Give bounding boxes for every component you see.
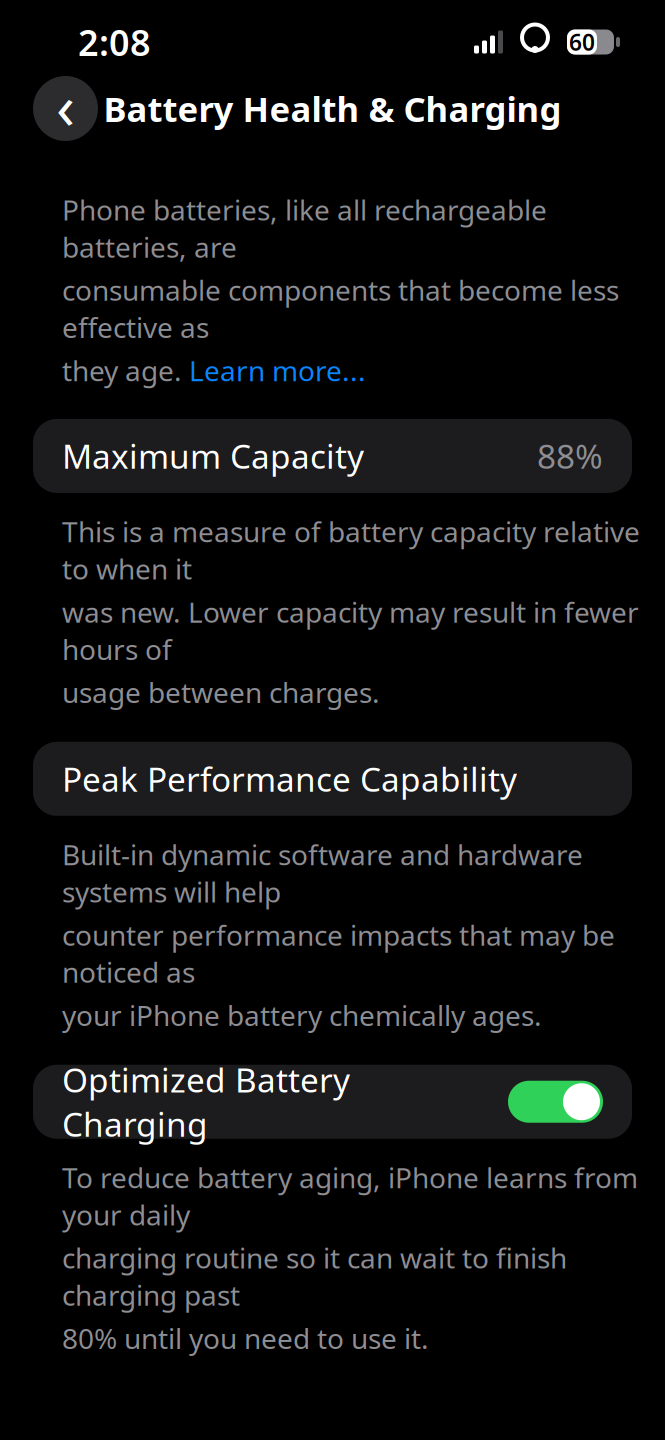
staticText: was new. Lower capacity may result in fe… <box>62 593 639 668</box>
staticText: ‹ <box>56 65 75 146</box>
staticText: Phone batteries, like all rechargeable b… <box>62 191 547 265</box>
staticText: counter performance impacts that may be … <box>62 916 615 991</box>
staticText: usage between charges. <box>62 674 380 711</box>
button[interactable]: Peak Performance Capability <box>33 742 632 816</box>
staticText: Maximum Capacity <box>62 434 364 478</box>
staticText: charging routine so it can wait to finis… <box>62 1239 567 1313</box>
button[interactable]: Maximum Capacity <box>33 419 632 493</box>
staticText: 80% until you need to use it. <box>62 1319 429 1357</box>
staticText: Learn more... <box>189 352 366 389</box>
button[interactable]: Learn more... <box>189 352 366 389</box>
staticText: consumable components that become less e… <box>62 271 619 346</box>
staticText: Peak Performance Capability <box>62 757 517 801</box>
staticText: Optimized Battery Charging <box>62 1057 350 1146</box>
staticText: they age. <box>62 352 189 389</box>
staticText: 2:08 <box>78 18 151 66</box>
staticText: Battery Health & Charging <box>103 85 561 131</box>
staticText: To reduce battery aging, iPhone learns f… <box>62 1159 638 1233</box>
button[interactable]: Back <box>33 76 98 141</box>
staticText: This is a measure of battery capacity re… <box>62 513 640 587</box>
staticText: 88% <box>537 434 603 478</box>
staticText: your iPhone battery chemically ages. <box>62 997 542 1034</box>
button[interactable]: Optimized Battery Charging <box>33 1065 632 1139</box>
staticText: Built-in dynamic software and hardware s… <box>62 836 583 910</box>
staticText: 60 <box>569 27 595 57</box>
